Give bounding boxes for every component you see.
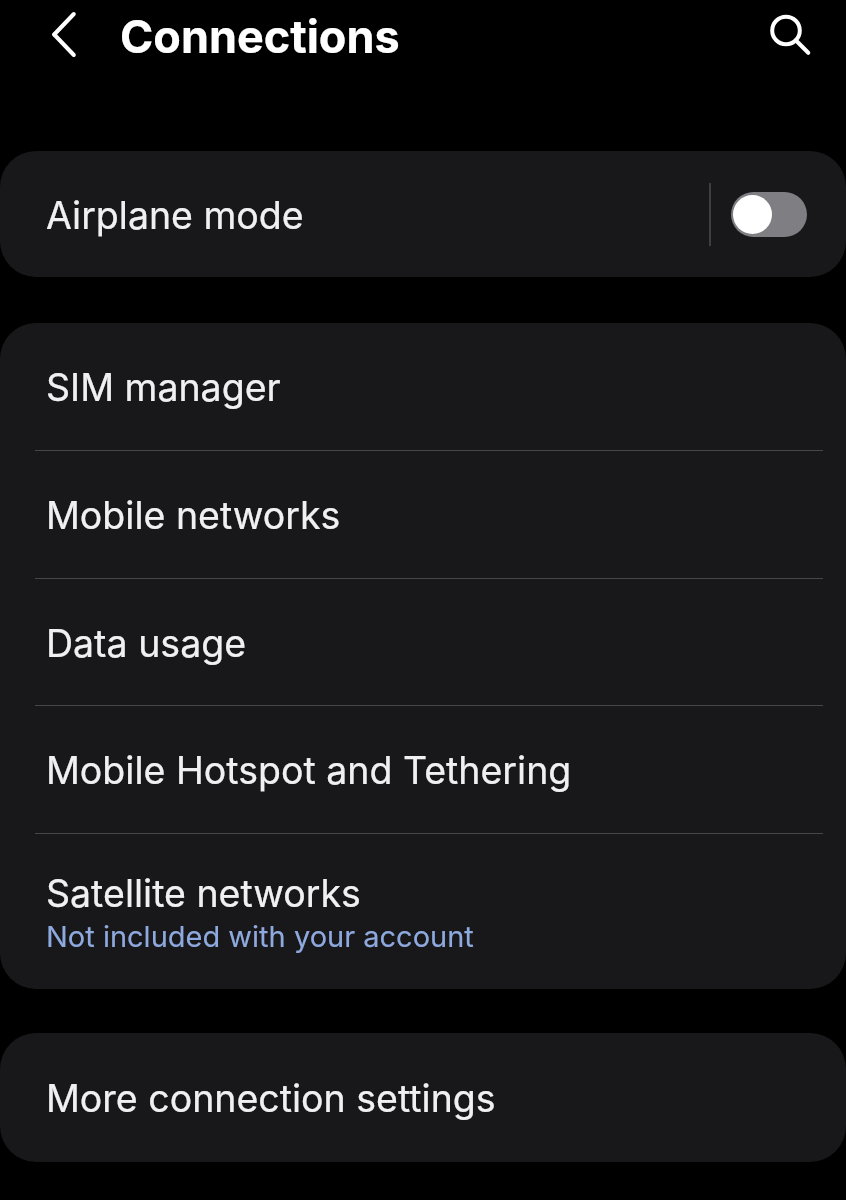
button[interactable]: Mobile Hotspot and Tethering [0,706,846,833]
button[interactable]: SIM manager [0,323,846,450]
staticText: SIM manager [46,365,281,410]
button[interactable]: Airplane mode [731,192,807,237]
button[interactable]: Airplane mode [0,151,846,277]
staticText: Mobile networks [46,493,341,538]
staticText: Mobile Hotspot and Tethering [46,748,572,793]
staticText: Data usage [46,621,247,666]
button[interactable]: Satellite networks [0,834,846,989]
button[interactable]: Mobile networks [0,451,846,578]
button[interactable]: Search [756,3,820,67]
staticText: Connections [120,9,400,63]
button[interactable]: Back [32,2,96,66]
staticText: More connection settings [46,1076,496,1121]
staticText: Satellite networks [46,871,361,916]
button[interactable]: Data usage [0,579,846,705]
staticText: Airplane mode [46,193,304,238]
button[interactable]: More connection settings [0,1033,846,1162]
staticText: Not included with your account [46,919,474,954]
